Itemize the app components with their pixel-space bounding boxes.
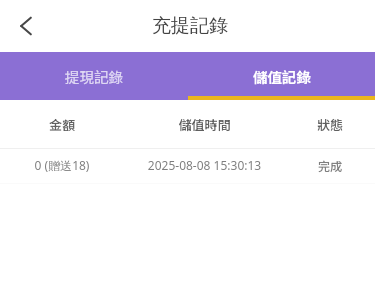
button[interactable]: 儲值記錄 (188, 52, 375, 100)
staticText: 0 (贈送18) (0, 157, 124, 173)
button[interactable]: Back (6, 6, 46, 46)
staticText: 儲值時間 (124, 115, 285, 134)
staticText: 金額 (0, 115, 124, 134)
staticText: 完成 (285, 157, 375, 174)
staticText: 提現記錄 (65, 66, 123, 87)
button[interactable]: 0 (贈送18) (0, 149, 375, 183)
button[interactable]: 提現記錄 (0, 52, 188, 100)
staticText: 2025-08-08 15:30:13 (124, 157, 285, 173)
staticText: 儲值記錄 (253, 66, 311, 87)
staticText: 充提記錄 (152, 14, 228, 38)
staticText: 狀態 (285, 115, 375, 134)
